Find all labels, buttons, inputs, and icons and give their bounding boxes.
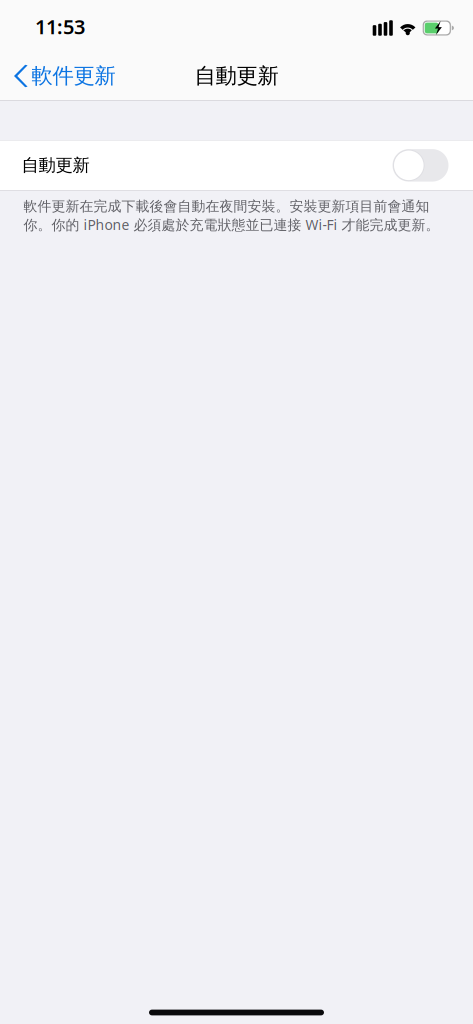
staticText: 軟件更新在完成下載後會自動在夜間安裝。安裝更新項目前會通知你。你的 iPhone… [23,198,439,234]
button[interactable]: 自動更新 [0,141,473,190]
staticText: 自動更新 [21,155,89,176]
staticText: 軟件更新 [32,63,116,89]
staticText: 自動更新 [194,63,278,89]
button[interactable]: 軟件更新 [0,51,126,101]
staticText: 11:53 [35,13,85,40]
